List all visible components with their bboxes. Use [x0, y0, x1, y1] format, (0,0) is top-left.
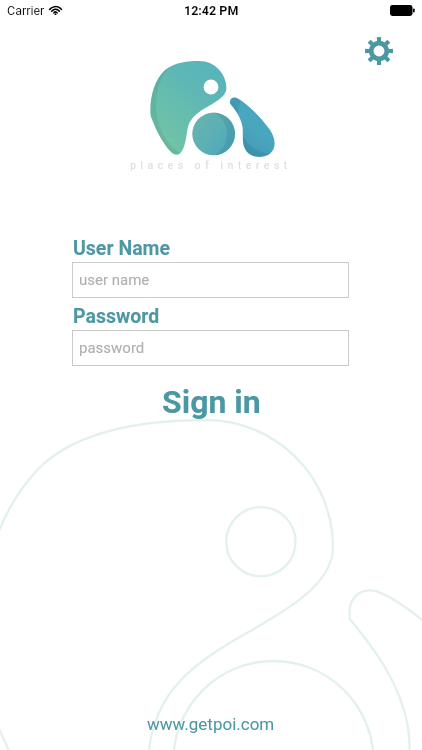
- button[interactable]: Settings: [360, 32, 397, 69]
- staticText: user name: [79, 271, 150, 289]
- staticText: 12:42 PM: [184, 3, 239, 18]
- button[interactable]: www.getpoi.com: [147, 714, 275, 734]
- staticText: Password: [73, 305, 160, 328]
- button[interactable]: password: [72, 330, 349, 366]
- staticText: Carrier: [7, 3, 45, 18]
- button[interactable]: user name: [72, 262, 349, 298]
- staticText: password: [79, 339, 145, 357]
- staticText: Sign in: [162, 383, 261, 421]
- staticText: User Name: [73, 237, 171, 260]
- staticText: places of interest: [0, 160, 422, 172]
- button[interactable]: Sign in: [0, 380, 422, 424]
